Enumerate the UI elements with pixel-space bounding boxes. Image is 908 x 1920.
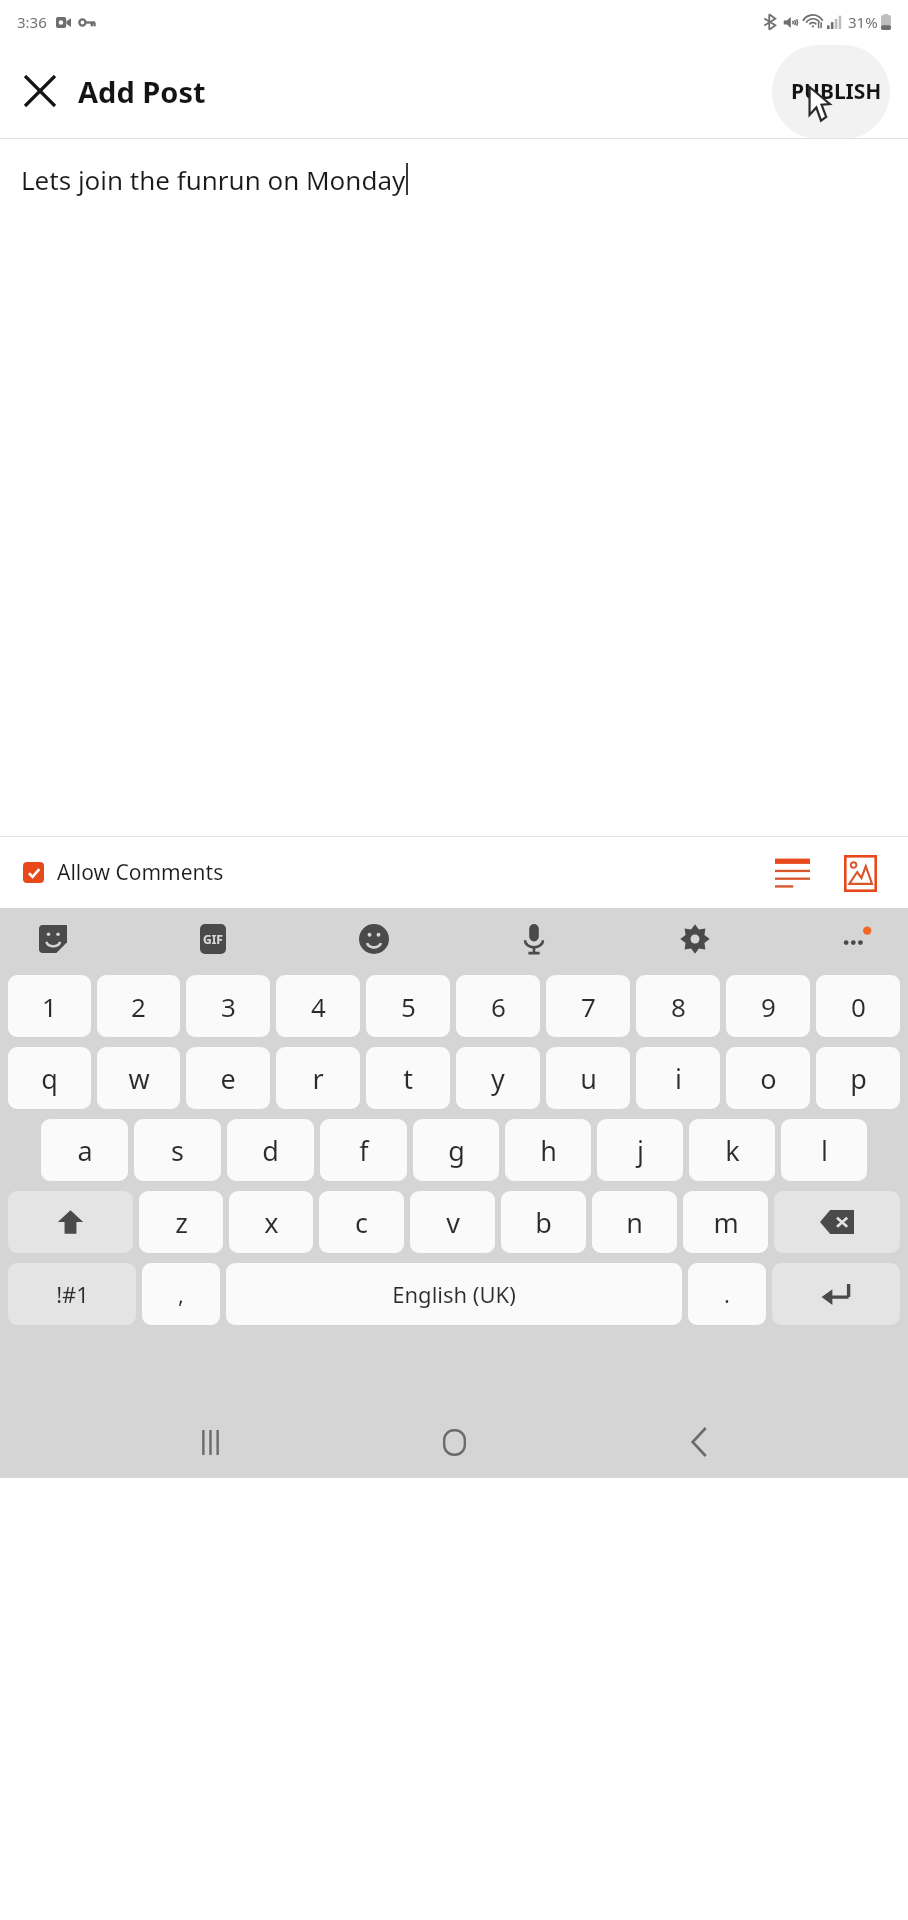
staticText: h (540, 1132, 557, 1169)
button[interactable]: r (276, 1047, 360, 1109)
button[interactable]: . (688, 1263, 766, 1325)
button[interactable]: d (227, 1119, 314, 1181)
staticText: b (535, 1204, 552, 1241)
button[interactable]: q (8, 1047, 91, 1109)
staticText: 8 (671, 989, 686, 1024)
button[interactable]: Recent apps (175, 1407, 245, 1477)
staticText: 4 (311, 989, 326, 1024)
staticText: v (446, 1204, 460, 1241)
button[interactable]: n (592, 1191, 677, 1253)
button[interactable]: sticker (26, 912, 80, 966)
staticText: q (41, 1060, 58, 1097)
button[interactable]: e (186, 1047, 270, 1109)
staticText: l (821, 1132, 828, 1169)
staticText: 0 (851, 989, 866, 1024)
button[interactable]: emoji (347, 912, 401, 966)
button[interactable]: w (97, 1047, 180, 1109)
button[interactable]: i (636, 1047, 720, 1109)
button[interactable]: c (319, 1191, 404, 1253)
button[interactable]: 4 (276, 975, 360, 1037)
staticText: o (760, 1060, 777, 1097)
button[interactable]: Close (6, 57, 74, 125)
staticText: GIF (203, 931, 223, 947)
button[interactable]: a (41, 1119, 128, 1181)
button[interactable]: PUBLISH (785, 67, 888, 116)
staticText: PUBLISH (791, 77, 882, 106)
button[interactable]: gif (186, 912, 240, 966)
button[interactable]: z (139, 1191, 223, 1253)
staticText: g (448, 1132, 465, 1169)
staticText: Add Post (78, 72, 206, 111)
button[interactable]: English (UK) (226, 1263, 682, 1325)
button[interactable]: gear (668, 912, 722, 966)
staticText: !#1 (56, 1279, 89, 1309)
button[interactable]: shift (8, 1191, 133, 1253)
button[interactable]: 6 (456, 975, 540, 1037)
button[interactable]: b (501, 1191, 586, 1253)
staticText: i (675, 1060, 682, 1097)
staticText: English (UK) (392, 1279, 516, 1309)
button[interactable]: Allow Comments (19, 854, 228, 891)
staticText: Lets join the funrun on Monday (21, 162, 406, 197)
button[interactable]: l (781, 1119, 867, 1181)
staticText: c (355, 1204, 368, 1241)
button[interactable]: !#1 (8, 1263, 136, 1325)
staticText: d (262, 1132, 279, 1169)
staticText: p (850, 1060, 867, 1097)
staticText: n (626, 1204, 643, 1241)
staticText: 9 (761, 989, 776, 1024)
button[interactable]: 9 (726, 975, 810, 1037)
button[interactable]: u (546, 1047, 630, 1109)
button[interactable]: f (320, 1119, 407, 1181)
button[interactable]: more (828, 912, 882, 966)
button[interactable]: k (689, 1119, 775, 1181)
button[interactable]: , (142, 1263, 220, 1325)
staticText: 31% (848, 12, 878, 32)
staticText: a (77, 1132, 93, 1169)
button[interactable]: 7 (546, 975, 630, 1037)
staticText: u (580, 1060, 597, 1097)
staticText: y (491, 1060, 505, 1097)
button[interactable]: m (683, 1191, 768, 1253)
button[interactable]: o (726, 1047, 810, 1109)
button[interactable]: h (505, 1119, 591, 1181)
button[interactable]: y (456, 1047, 540, 1109)
button[interactable]: Home (419, 1407, 489, 1477)
staticText: s (171, 1132, 184, 1169)
staticText: , (178, 1279, 184, 1309)
button[interactable]: p (816, 1047, 900, 1109)
button[interactable]: 0 (816, 975, 900, 1037)
staticText: 3 (221, 989, 236, 1024)
staticText: f (359, 1132, 369, 1169)
button[interactable]: g (413, 1119, 499, 1181)
button[interactable]: v (410, 1191, 495, 1253)
staticText: 5 (401, 989, 416, 1024)
button[interactable]: s (134, 1119, 221, 1181)
staticText: m (713, 1204, 739, 1241)
button[interactable]: 1 (8, 975, 91, 1037)
button[interactable]: t (366, 1047, 450, 1109)
staticText: w (128, 1060, 150, 1097)
button[interactable]: 5 (366, 975, 450, 1037)
staticText: 3:36 (17, 12, 47, 32)
button[interactable]: Add image (832, 845, 888, 901)
staticText: z (175, 1204, 188, 1241)
staticText: k (725, 1132, 740, 1169)
staticText: 1 (42, 989, 57, 1024)
staticText: 7 (581, 989, 596, 1024)
button[interactable]: Add text (764, 845, 820, 901)
button[interactable]: j (597, 1119, 683, 1181)
button[interactable]: 2 (97, 975, 180, 1037)
staticText: j (637, 1132, 644, 1169)
button[interactable]: mic (507, 912, 561, 966)
button[interactable]: enter (772, 1263, 900, 1325)
button[interactable]: x (229, 1191, 313, 1253)
staticText: 2 (131, 989, 146, 1024)
button[interactable]: Back (664, 1407, 734, 1477)
staticText: e (220, 1060, 236, 1097)
button[interactable]: 8 (636, 975, 720, 1037)
button[interactable]: 3 (186, 975, 270, 1037)
staticText: . (724, 1279, 730, 1309)
button[interactable]: del (774, 1191, 900, 1253)
staticText: x (264, 1204, 279, 1241)
